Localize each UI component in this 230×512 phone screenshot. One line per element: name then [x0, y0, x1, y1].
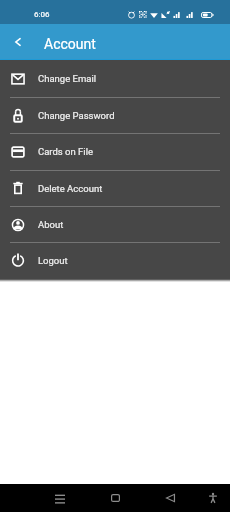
staticText: Logout — [38, 255, 68, 266]
button[interactable]: Recent apps — [46, 484, 74, 512]
staticText: Change Email — [38, 73, 97, 84]
staticText: Cards on File — [38, 146, 94, 157]
button[interactable]: Change Password — [0, 97, 230, 134]
staticText: Account — [44, 36, 96, 52]
button[interactable]: Home — [101, 484, 129, 512]
staticText: Delete Account — [38, 183, 103, 194]
staticText: Change Password — [38, 110, 115, 121]
staticText: 6:06 — [34, 10, 50, 19]
button[interactable]: Cards on File — [0, 133, 230, 170]
button[interactable]: Delete Account — [0, 170, 230, 206]
staticText: About — [38, 219, 64, 230]
button[interactable]: Logout — [0, 242, 230, 278]
button[interactable]: Back — [156, 484, 184, 512]
button[interactable]: Navigate up — [0, 24, 36, 60]
button[interactable]: Accessibility — [199, 484, 227, 512]
button[interactable]: About — [0, 206, 230, 243]
button[interactable]: Change Email — [0, 60, 230, 97]
